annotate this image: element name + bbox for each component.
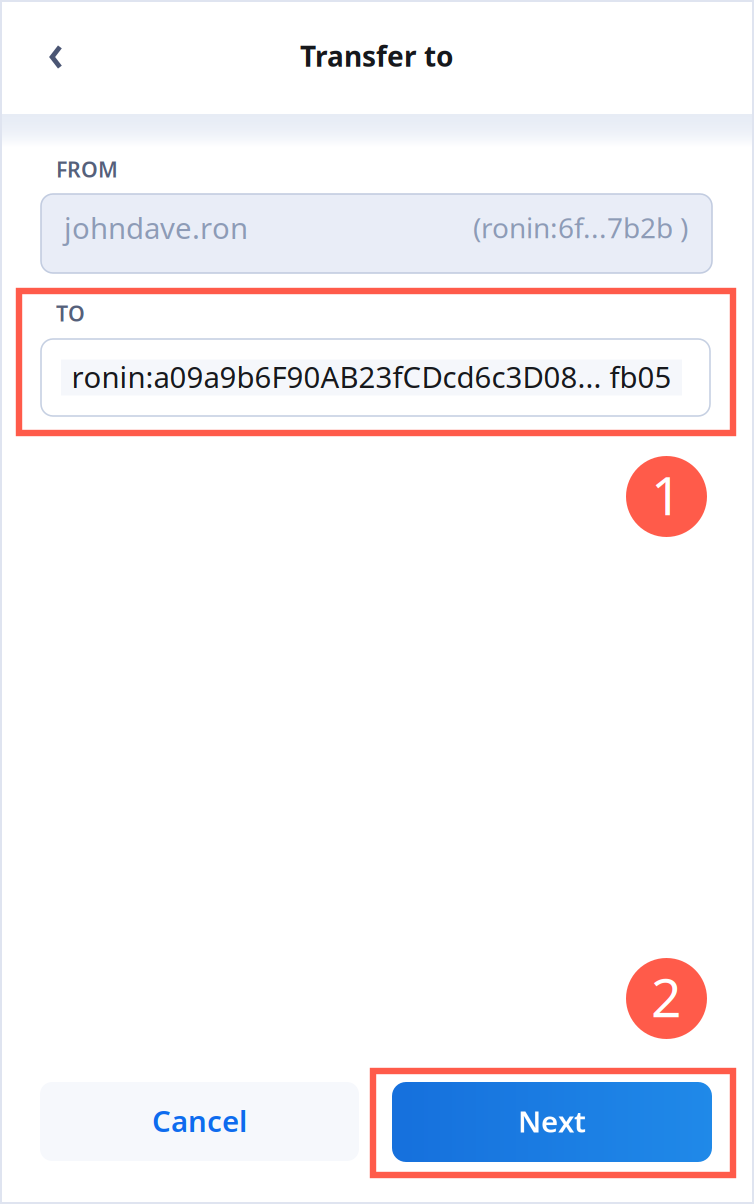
staticText: johndave.ron <box>64 208 248 247</box>
staticText: Transfer to <box>300 37 454 75</box>
staticText: ronin:a09a9b6F90AB23fCDcd6c3D08... fb05 <box>71 357 671 396</box>
staticText: (ronin:6f...7b2b ) <box>473 209 688 246</box>
staticText: TO <box>56 299 85 327</box>
staticText: 1 <box>651 459 682 530</box>
staticText: FROM <box>56 155 118 183</box>
button[interactable]: Cancel <box>40 1082 359 1161</box>
staticText: 2 <box>651 961 682 1032</box>
button[interactable]: Back <box>18 19 94 95</box>
button[interactable]: ronin:a09a9b6F90AB23fCDcd6c3D08... fb05 <box>41 339 710 416</box>
staticText: Next <box>518 1101 586 1140</box>
button[interactable]: Next <box>392 1082 712 1162</box>
staticText: Cancel <box>152 1101 247 1140</box>
